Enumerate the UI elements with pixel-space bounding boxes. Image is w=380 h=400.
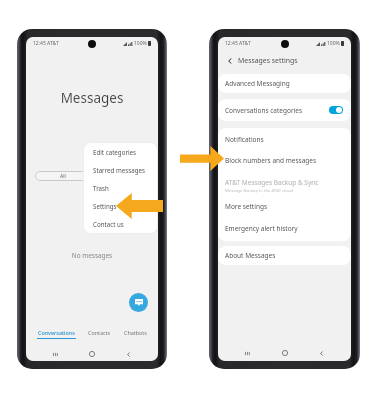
button[interactable]: Back (316, 348, 326, 358)
button[interactable]: Chatbots (122, 329, 149, 336)
staticText: More settings (225, 202, 268, 211)
staticText: Chatbots (124, 329, 147, 336)
button[interactable]: Back (123, 349, 133, 359)
staticText: Message Backup in the AT&T cloud (225, 188, 294, 194)
staticText: Edit categories (93, 148, 137, 156)
staticText: Starred messages (93, 166, 145, 174)
staticText: Contact us (93, 220, 124, 228)
staticText: 12:45 AT&T (225, 40, 251, 47)
staticText: 12:45 AT&T (33, 40, 59, 47)
staticText: 100% (134, 40, 147, 47)
button[interactable]: New conversation (129, 293, 148, 312)
button[interactable]: Home (87, 349, 97, 359)
staticText: 100% (327, 40, 340, 47)
staticText: Contacts (88, 329, 111, 336)
button[interactable]: Block numbers and messages (218, 151, 351, 169)
staticText: Conversations (38, 329, 75, 336)
button[interactable]: Notifications (218, 130, 351, 148)
staticText: AT&T Messages Backup & Sync (225, 178, 319, 187)
button[interactable]: Advanced Messaging (218, 74, 351, 93)
button[interactable]: Recents (242, 348, 252, 358)
staticText: No messages (26, 251, 158, 260)
button[interactable]: Conversations (36, 329, 77, 339)
button[interactable]: Conversations categories (218, 99, 351, 121)
staticText: Notifications (225, 135, 264, 144)
button[interactable]: Starred messages (84, 161, 157, 179)
other: Back (225, 56, 234, 65)
button[interactable]: About Messages (218, 246, 351, 265)
button[interactable]: Edit categories (84, 143, 157, 161)
button[interactable]: Contacts (86, 329, 113, 336)
button[interactable]: Contact us (84, 215, 157, 233)
staticText: Advanced Messaging (225, 79, 290, 88)
staticText: Messages (26, 89, 158, 107)
staticText: Settings (93, 202, 117, 210)
button[interactable]: Emergency alert history (218, 219, 351, 237)
button[interactable]: Home (280, 348, 290, 358)
button[interactable]: Trash (84, 179, 157, 197)
staticText: Messages settings (238, 56, 298, 65)
button[interactable]: Recents (50, 349, 60, 359)
button[interactable]: More settings (218, 197, 351, 215)
staticText: Emergency alert history (225, 224, 298, 233)
staticText: Conversations categories (225, 106, 303, 115)
staticText: Trash (93, 184, 109, 192)
button[interactable]: All (35, 171, 91, 181)
button[interactable]: Back (218, 52, 351, 68)
button[interactable]: Settings (84, 197, 157, 215)
staticText: About Messages (225, 251, 276, 260)
staticText: Block numbers and messages (225, 156, 317, 165)
staticText: All (60, 173, 66, 180)
